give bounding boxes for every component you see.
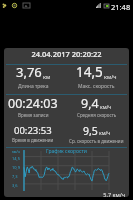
staticText: Ср. скорость в движении <box>69 138 124 144</box>
staticText: 14,5 <box>76 63 103 81</box>
button[interactable]: 24.04.2017 20:20:22 <box>4 48 129 197</box>
staticText: 21:48 <box>111 2 131 12</box>
staticText: 9,4 <box>81 95 99 112</box>
staticText: км/ч <box>104 73 117 80</box>
staticText: 9,5 <box>83 124 98 138</box>
staticText: км <box>43 73 51 80</box>
staticText: Средняя скорость <box>77 112 117 118</box>
staticText: Длина трека <box>18 83 49 90</box>
other: Screenshot <box>23 3 30 8</box>
staticText: 10,9 <box>12 165 20 170</box>
staticText: 00:23:53 <box>14 124 52 137</box>
staticText: 3,76 <box>16 63 42 81</box>
staticText: 14,5 <box>12 156 20 161</box>
staticText: 3,6 <box>12 183 18 188</box>
staticText: км/ч <box>12 149 20 154</box>
staticText: Время в движении <box>12 137 54 143</box>
staticText: 7,3 <box>12 174 18 179</box>
staticText: км/ч <box>100 104 112 111</box>
staticText: 5,7 км/ч <box>4 191 125 197</box>
staticText: Время записи <box>18 112 49 118</box>
staticText: км/ч <box>99 130 111 137</box>
staticText: График скорости <box>4 148 129 155</box>
staticText: 00:24:03 <box>8 95 58 112</box>
other: Sync <box>12 3 17 8</box>
staticText: Макс. скорость <box>78 83 115 90</box>
other: Notification <box>2 3 7 8</box>
staticText: 24.04.2017 20:20:22 <box>4 49 129 59</box>
